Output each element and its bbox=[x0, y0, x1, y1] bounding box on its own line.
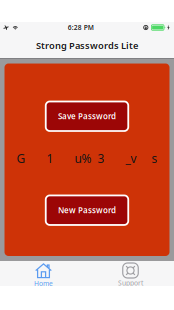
staticText: Home bbox=[34, 279, 53, 288]
button[interactable]: Home bbox=[0, 261, 87, 286]
button[interactable]: Support bbox=[87, 261, 174, 286]
button[interactable]: New Password bbox=[46, 195, 128, 225]
staticText: New Password bbox=[58, 205, 116, 215]
staticText: G 1 u% 3 _v s bbox=[16, 150, 157, 166]
staticText: Save Password bbox=[58, 111, 116, 121]
staticText: Strong Passwords Lite bbox=[36, 39, 138, 52]
staticText: 6:28 PM bbox=[68, 23, 94, 32]
button[interactable]: Save Password bbox=[46, 101, 128, 131]
staticText: Support bbox=[118, 279, 143, 287]
